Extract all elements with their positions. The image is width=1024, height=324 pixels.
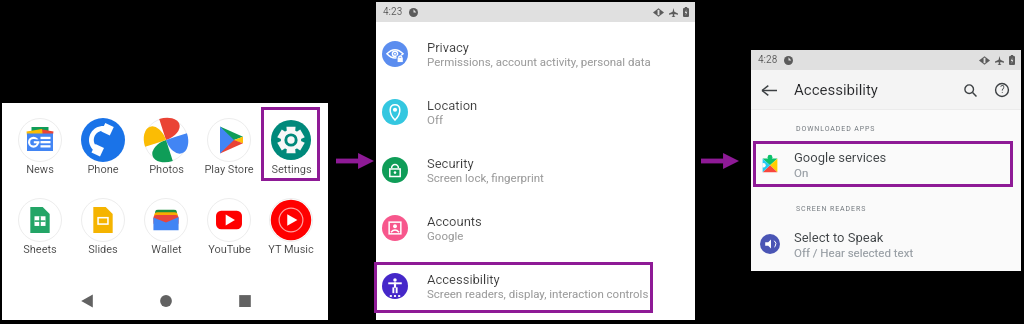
staticText: YT Music [268, 243, 314, 256]
staticText: Settings [271, 163, 312, 176]
staticText: Off [427, 113, 443, 126]
button[interactable]: YouTube [201, 198, 257, 256]
staticText: Sheets [23, 243, 57, 256]
staticText: News [26, 163, 54, 176]
staticText: Screen readers, display, interaction con… [427, 287, 649, 300]
staticText: Slides [88, 243, 118, 256]
staticText: Select to Speak [794, 230, 884, 245]
button[interactable]: YT Music [263, 198, 319, 256]
button[interactable]: Search [957, 77, 983, 103]
staticText: Play Store [204, 163, 254, 176]
staticText: YouTube [208, 243, 251, 256]
staticText: Google [427, 229, 464, 242]
button[interactable]: Phone [75, 118, 131, 176]
staticText: Phone [87, 163, 119, 176]
staticText: Screen lock, fingerprint [427, 171, 544, 184]
staticText: Privacy [427, 40, 469, 55]
button[interactable]: Settings [263, 118, 319, 176]
button[interactable]: Accounts [376, 203, 695, 253]
button[interactable]: Back [60, 285, 114, 317]
button[interactable]: Slides [75, 198, 131, 256]
button[interactable]: Play Store [201, 118, 257, 176]
button[interactable]: Home [139, 285, 193, 317]
staticText: Permissions, account activity, personal … [427, 55, 651, 68]
staticText: Accessibility [794, 81, 878, 99]
button[interactable]: Accessibility [376, 261, 695, 311]
staticText: Off / Hear selected text [794, 246, 914, 259]
staticText: ? [1000, 84, 1005, 96]
staticText: Accessibility [427, 272, 500, 287]
button[interactable]: Sheets [12, 198, 68, 256]
staticText: Photos [149, 163, 184, 176]
button[interactable]: Recent apps [218, 285, 272, 317]
button[interactable]: News [12, 118, 68, 176]
button[interactable]: Privacy [376, 29, 695, 79]
button[interactable]: Photos [138, 118, 194, 176]
staticText: Accounts [427, 214, 482, 229]
button[interactable]: Back [755, 76, 783, 104]
staticText: On [794, 166, 809, 179]
button[interactable]: Security [376, 145, 695, 195]
staticText: SCREEN READERS [796, 205, 867, 213]
staticText: Google services [794, 150, 887, 165]
staticText: Security [427, 156, 474, 171]
staticText: 4:28 [758, 54, 778, 66]
button[interactable]: Select to Speak [751, 221, 1021, 267]
staticText: Location [427, 98, 478, 113]
staticText: DOWNLOADED APPS [796, 125, 876, 133]
button[interactable]: Google services [751, 141, 1021, 187]
button[interactable]: Wallet [138, 198, 194, 256]
staticText: Wallet [151, 243, 182, 256]
staticText: 4:23 [383, 6, 403, 18]
button[interactable]: Location [376, 87, 695, 137]
button[interactable]: Help [989, 77, 1015, 103]
